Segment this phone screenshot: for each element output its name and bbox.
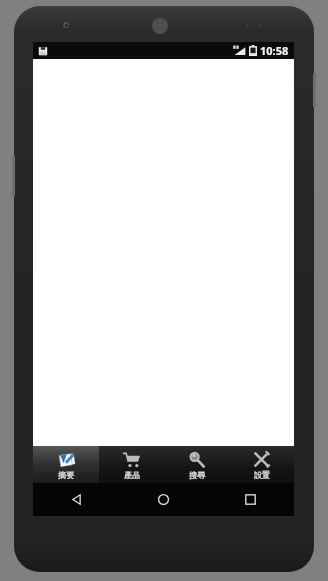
button[interactable]: 摘要 xyxy=(33,446,99,483)
staticText: 摘要 xyxy=(58,470,74,480)
button[interactable]: 產品 xyxy=(99,446,164,483)
button[interactable]: Recent apps xyxy=(207,483,294,516)
staticText: 10:58 xyxy=(260,43,289,58)
staticText: 搜尋 xyxy=(189,470,205,480)
button[interactable]: Home xyxy=(120,483,207,516)
button[interactable]: 搜尋 xyxy=(164,446,229,483)
button[interactable]: 設置 xyxy=(229,446,294,483)
button[interactable]: Back xyxy=(33,483,120,516)
staticText: 產品 xyxy=(124,470,140,480)
staticText: 設置 xyxy=(254,470,270,480)
